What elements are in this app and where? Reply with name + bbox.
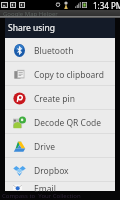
staticText: 1:34 PM xyxy=(93,0,120,10)
staticText: Dropbox xyxy=(34,165,69,177)
staticText: Email xyxy=(34,183,56,192)
staticText: Compass to Your Collection xyxy=(2,192,81,200)
staticText: Google Map Helper xyxy=(3,10,58,16)
button[interactable]: Create pin xyxy=(5,86,115,109)
staticText: Copy to clipboard xyxy=(34,69,104,81)
button[interactable]: Dropbox xyxy=(5,158,115,181)
staticText: Share using xyxy=(8,22,56,34)
button[interactable]: Bluetooth xyxy=(5,38,115,61)
button[interactable]: Copy to clipboard xyxy=(5,62,115,85)
staticText: Create pin xyxy=(34,93,76,105)
button[interactable]: Decode QR Code xyxy=(5,110,115,133)
button[interactable]: Email xyxy=(5,182,115,191)
staticText: Drive xyxy=(34,141,56,153)
button[interactable]: Drive xyxy=(5,134,115,157)
staticText: Decode QR Code xyxy=(34,117,102,129)
staticText: Bluetooth xyxy=(34,45,74,57)
